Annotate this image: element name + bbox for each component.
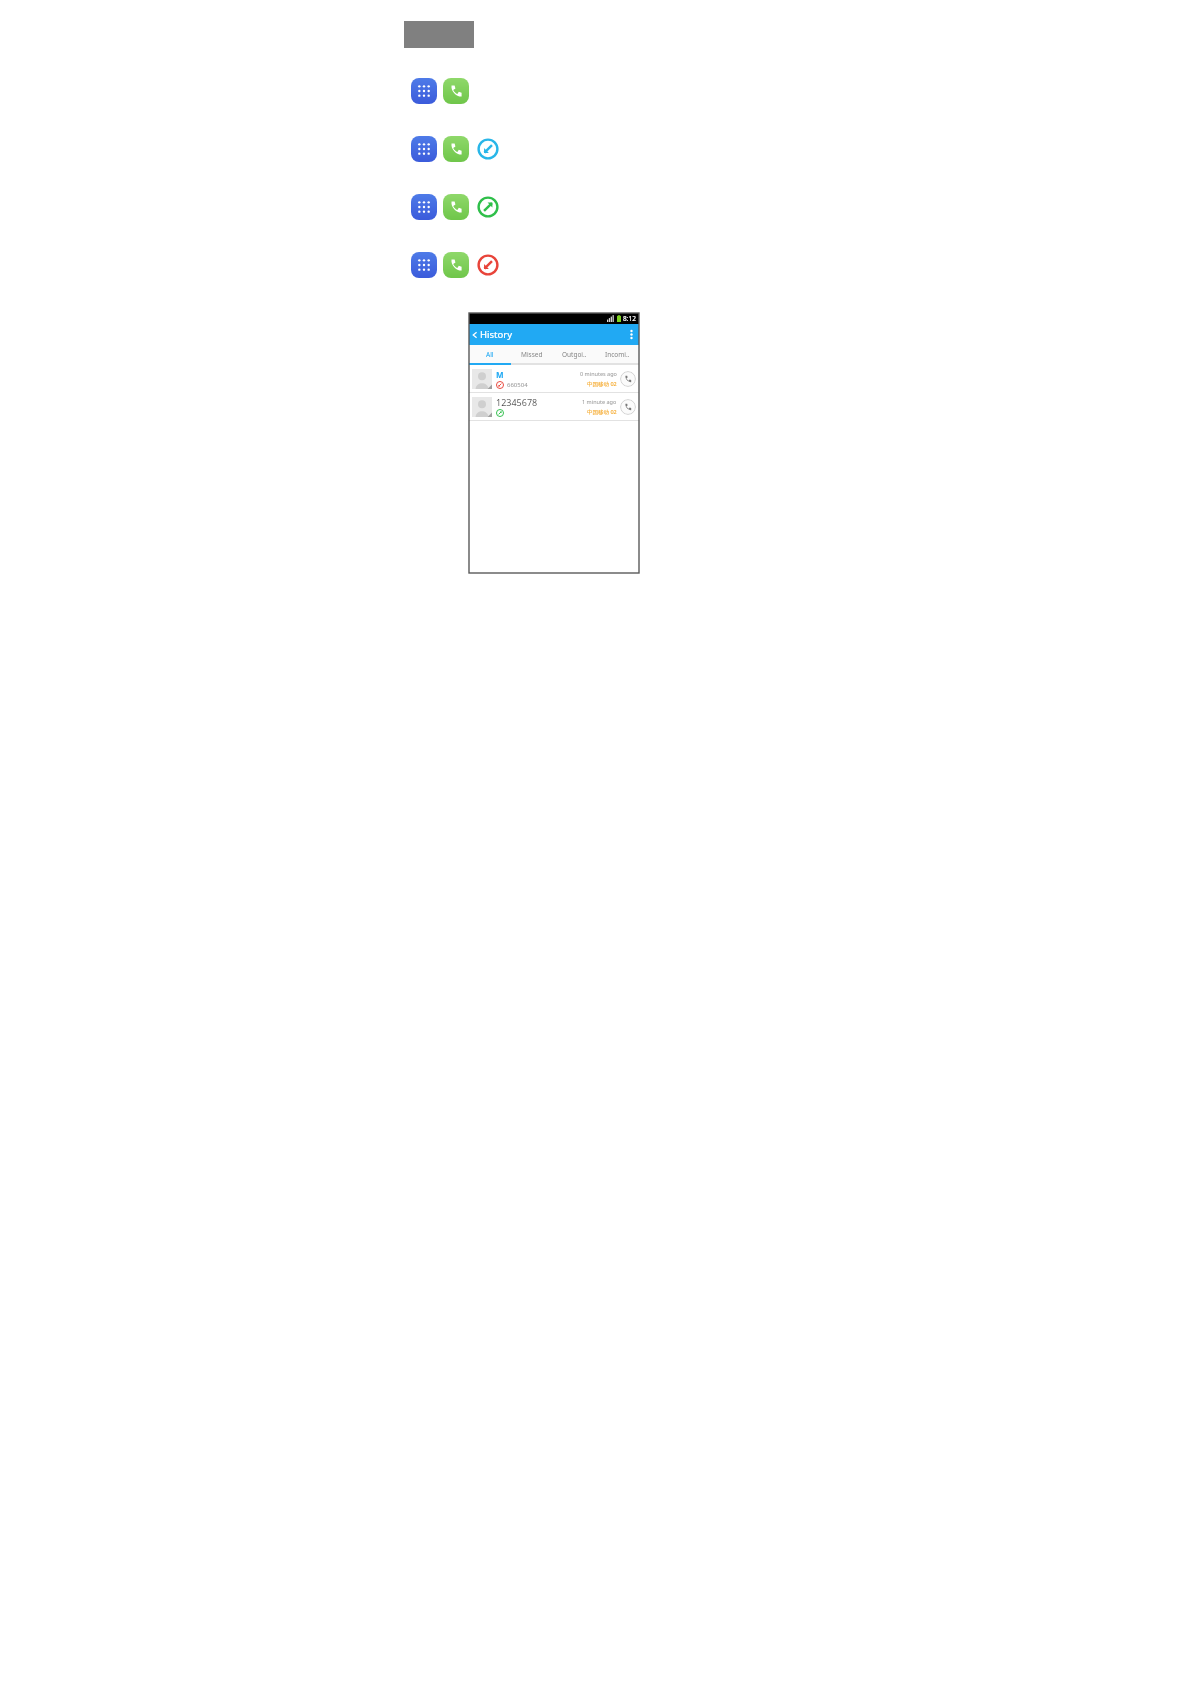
button[interactable]: All [469, 345, 511, 363]
button[interactable]: Outgoi.. [553, 345, 596, 363]
button[interactable]: Dialpad [411, 78, 437, 104]
button[interactable]: Dialpad [411, 252, 437, 278]
staticText: 1 minute ago [582, 398, 617, 405]
button[interactable]: Dialpad [411, 194, 437, 220]
staticText: 660504 [507, 381, 528, 389]
staticText: 0 minutes ago [580, 370, 617, 377]
button[interactable]: Back [469, 328, 512, 341]
button[interactable]: Missed call [475, 252, 501, 278]
staticText: Incomi.. [605, 350, 630, 359]
button[interactable]: Dialpad [411, 136, 437, 162]
staticText: 12345678 [496, 396, 538, 408]
staticText: Outgoi.. [562, 350, 587, 359]
staticText: History [480, 328, 512, 341]
button[interactable]: Phone [443, 194, 469, 220]
staticText: 8:12 [623, 314, 636, 323]
button[interactable]: Incomi.. [596, 345, 639, 363]
button[interactable]: All calls [475, 136, 501, 162]
button[interactable]: Phone [443, 252, 469, 278]
button[interactable]: Phone [443, 136, 469, 162]
other: Back [471, 331, 479, 339]
button[interactable]: Call [620, 371, 636, 387]
button[interactable]: Phone [443, 78, 469, 104]
button[interactable]: Call [620, 399, 636, 415]
button[interactable]: Outgoing call [475, 194, 501, 220]
button[interactable]: 12345678 [469, 393, 639, 420]
button[interactable]: M [469, 365, 639, 392]
staticText: 中国移动 02 [587, 380, 617, 388]
staticText: Missed [521, 350, 543, 359]
staticText: 中国移动 02 [587, 408, 617, 416]
button[interactable]: Missed [511, 345, 553, 363]
staticText: M [496, 369, 504, 380]
staticText: All [486, 350, 494, 359]
button[interactable]: More options [623, 324, 639, 345]
